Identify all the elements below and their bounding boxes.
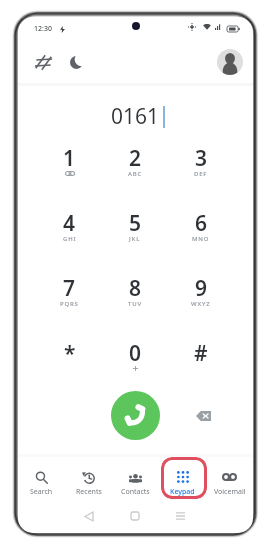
staticText: 2 (129, 144, 142, 173)
button[interactable]: Back (79, 506, 99, 526)
staticText: DEF (194, 170, 208, 178)
staticText: Keypad (170, 487, 195, 497)
button[interactable]: Do not disturb (61, 47, 91, 77)
button[interactable]: Sort (28, 47, 58, 77)
staticText: 1 (63, 144, 76, 173)
staticText: MNO (192, 235, 210, 243)
button[interactable]: Contacts (112, 457, 159, 501)
staticText: * (64, 339, 76, 368)
staticText: JKL (129, 235, 141, 243)
staticText: 3 (195, 144, 208, 173)
button[interactable]: 5 (102, 196, 168, 261)
staticText: # (194, 339, 208, 368)
button[interactable]: Backspace (188, 401, 218, 431)
button[interactable]: 1 (37, 131, 102, 196)
staticText: Voicemail (214, 487, 246, 497)
staticText: 7 (63, 274, 76, 303)
button[interactable]: Home (125, 506, 145, 526)
staticText: 0 (129, 339, 142, 368)
staticText: 0161 (111, 102, 160, 131)
button[interactable]: # (168, 326, 234, 391)
button[interactable]: Search (18, 457, 65, 501)
button[interactable]: 3 (168, 131, 234, 196)
staticText: 12:30 (34, 24, 52, 34)
staticText: 8 (129, 274, 142, 303)
button[interactable]: * (37, 326, 102, 391)
button[interactable]: 0 (102, 326, 168, 391)
staticText: Contacts (121, 487, 150, 497)
button[interactable]: Profile (215, 47, 245, 77)
staticText: 5 (129, 209, 142, 238)
staticText: 6 (195, 209, 208, 238)
button[interactable]: 4 (37, 196, 102, 261)
button[interactable]: 6 (168, 196, 234, 261)
staticText: Recents (76, 487, 102, 497)
staticText: ABC (128, 170, 143, 178)
button[interactable]: 9 (168, 261, 234, 326)
button[interactable]: 7 (37, 261, 102, 326)
staticText: TUV (128, 300, 142, 308)
staticText: WXYZ (191, 300, 211, 308)
button[interactable]: Call (111, 391, 160, 440)
staticText: GHI (63, 235, 77, 243)
staticText: Search (30, 487, 53, 497)
staticText: 9 (195, 274, 208, 303)
button[interactable]: Recent apps (170, 506, 190, 526)
staticText: PQRS (60, 300, 79, 308)
button[interactable]: Keypad (159, 457, 206, 501)
button[interactable]: 2 (102, 131, 168, 196)
button[interactable]: Voicemail (206, 457, 253, 501)
button[interactable]: Recents (65, 457, 112, 501)
button[interactable]: 8 (102, 261, 168, 326)
staticText: 4 (63, 209, 76, 238)
